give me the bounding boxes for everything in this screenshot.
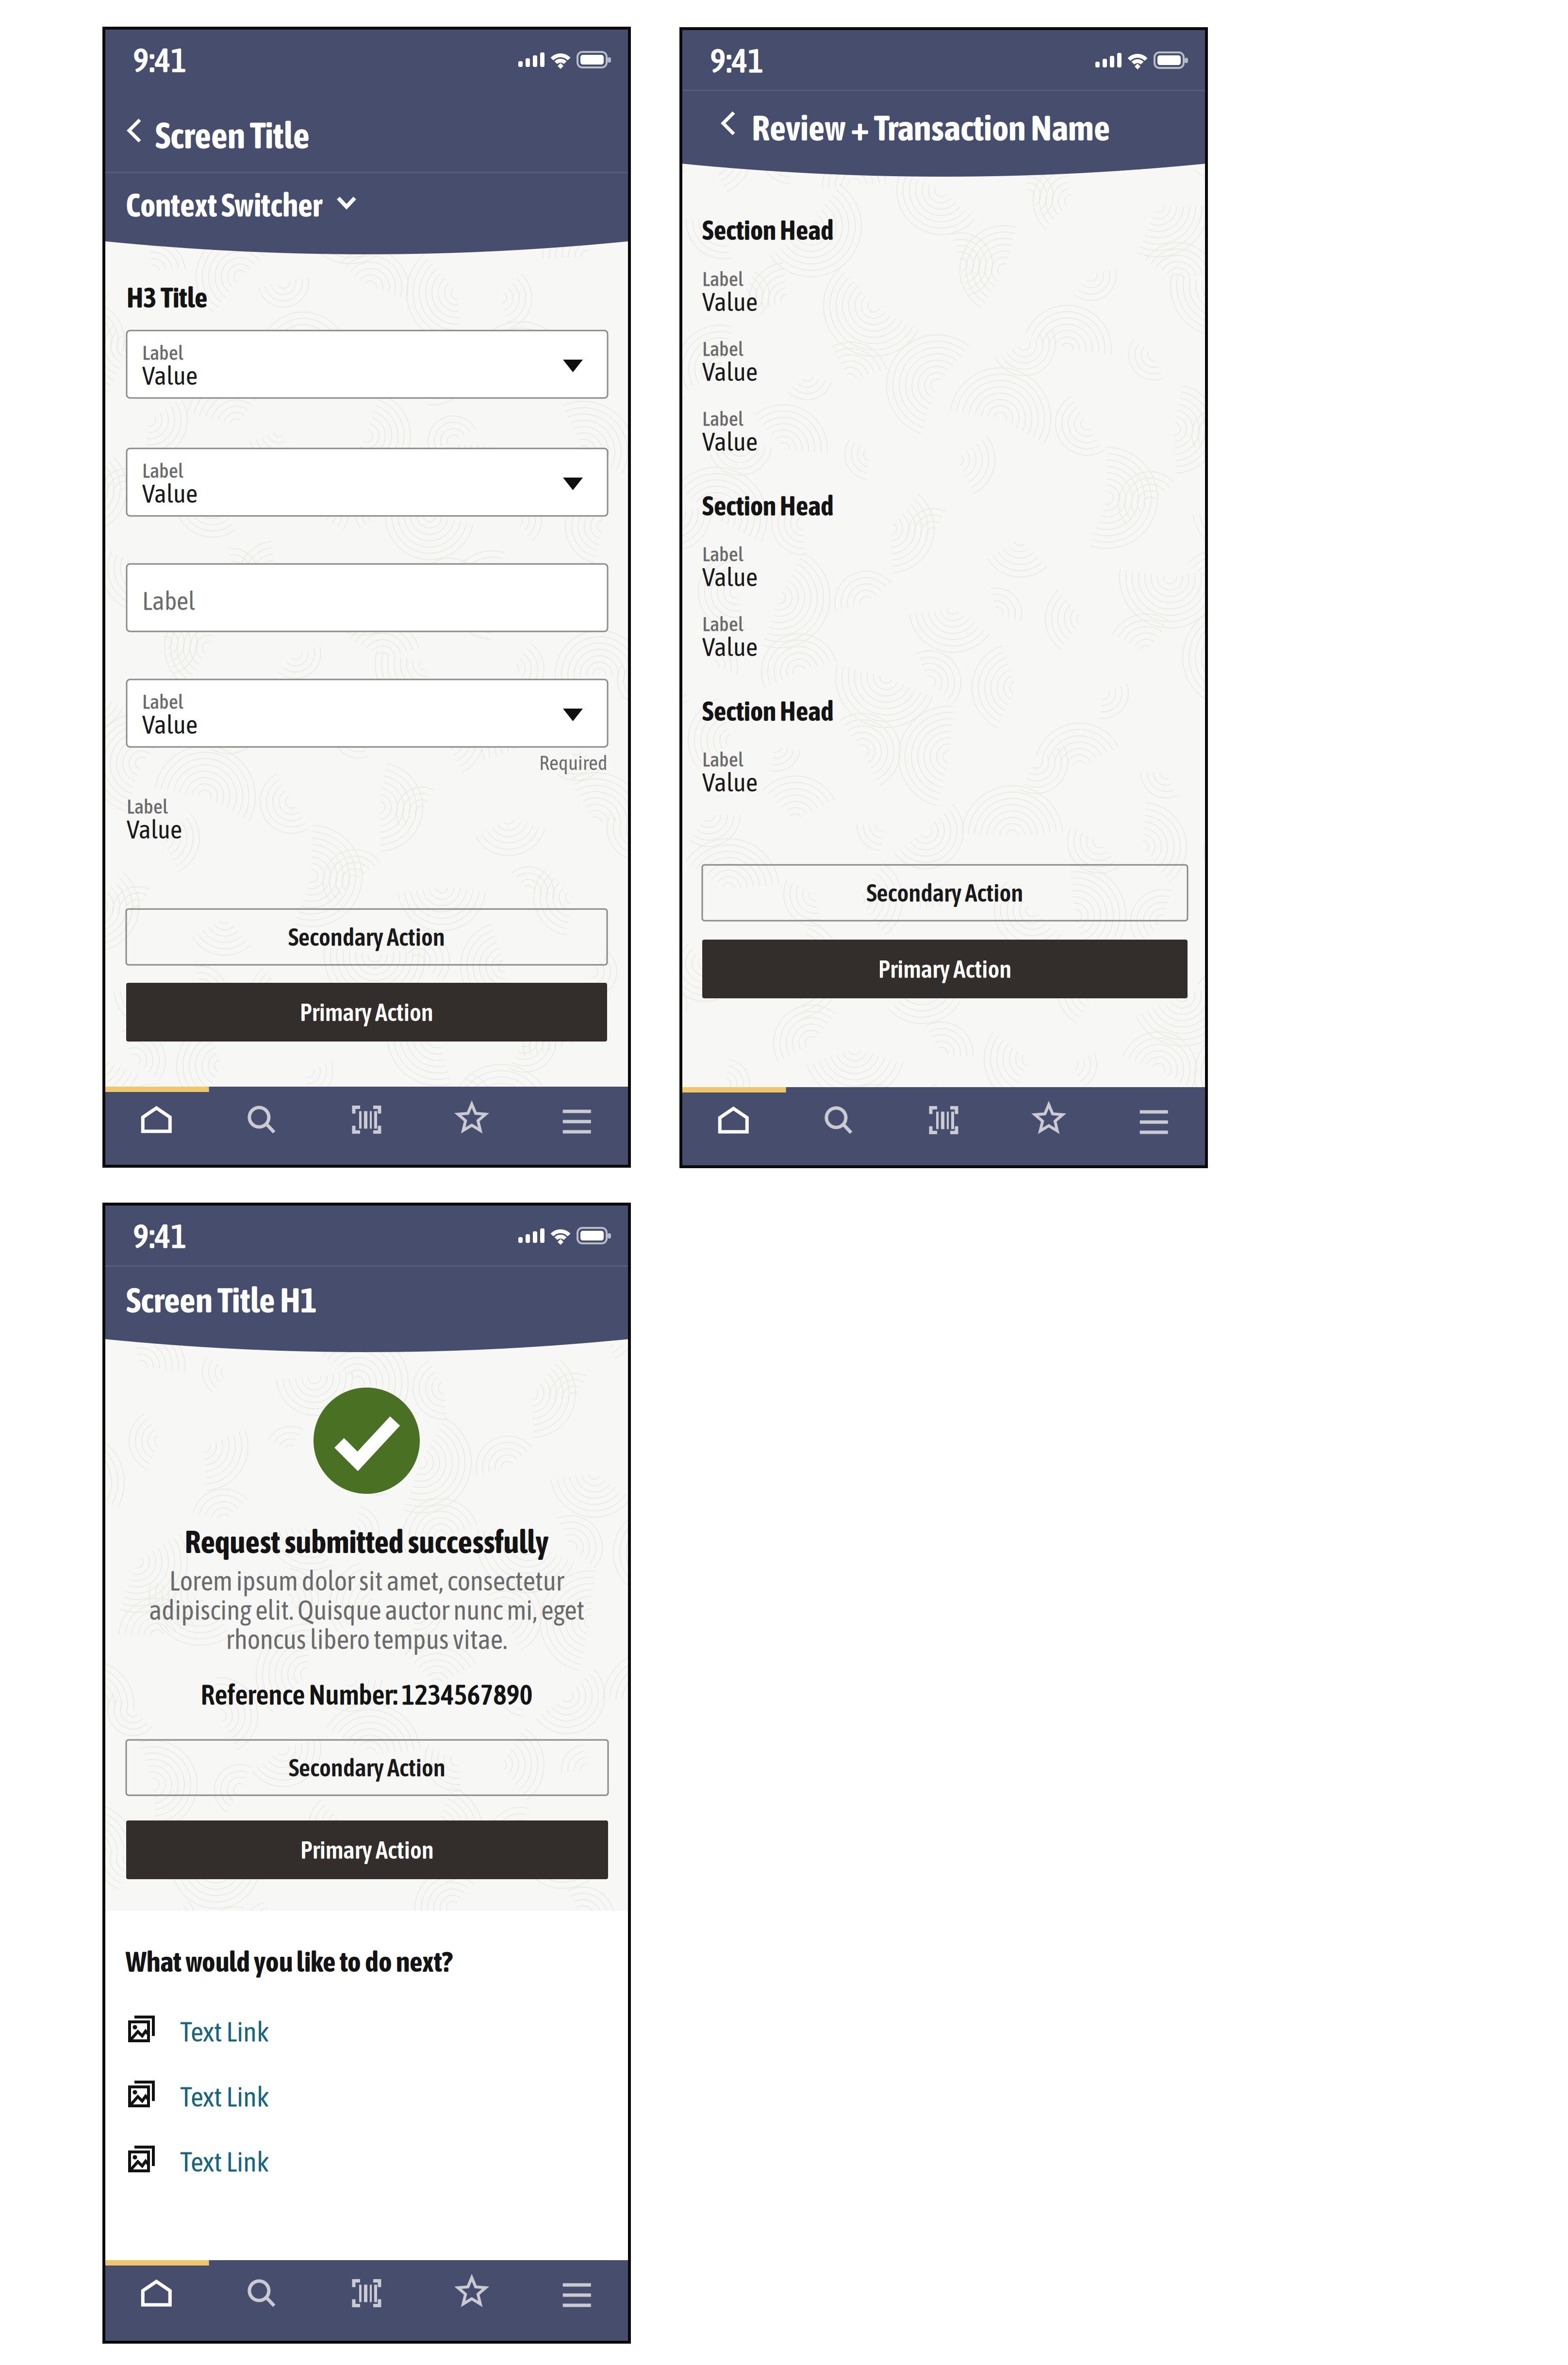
staticText: Screen Title H1 xyxy=(126,1280,317,1320)
button[interactable]: Menu xyxy=(1101,1107,1206,1138)
staticText: Review + Transaction Name xyxy=(752,107,1110,148)
button[interactable]: Search xyxy=(209,1104,314,1135)
button[interactable]: Scan barcode xyxy=(314,2278,419,2309)
staticText: H3 Title xyxy=(127,281,208,314)
button[interactable]: Favorites xyxy=(996,1104,1101,1135)
staticText: Section Head xyxy=(702,490,834,521)
staticText: Reference Number: 1234567890 xyxy=(201,1679,533,1711)
staticText: 9:41 xyxy=(133,1217,187,1255)
staticText: What would you like to do next? xyxy=(126,1945,452,1978)
button[interactable]: Favorites xyxy=(419,1103,524,1134)
staticText: Label xyxy=(702,748,743,771)
staticText: Value xyxy=(127,814,182,844)
button[interactable]: Context Switcher xyxy=(126,186,465,220)
button[interactable]: Text Link xyxy=(128,2146,419,2172)
staticText: Label xyxy=(702,407,743,430)
staticText: Secondary Action xyxy=(867,879,1023,907)
button[interactable]: Secondary Action xyxy=(126,909,607,965)
staticText: Value xyxy=(702,632,758,662)
button[interactable]: Primary Action xyxy=(126,1820,608,1879)
button[interactable]: Menu xyxy=(524,1106,629,1137)
button[interactable]: Scan barcode xyxy=(314,1104,419,1135)
staticText: Request submitted successfully xyxy=(185,1523,549,1560)
button[interactable]: Primary Action xyxy=(702,940,1188,998)
staticText: Label xyxy=(127,795,168,818)
staticText: Value xyxy=(702,287,758,316)
staticText: 9:41 xyxy=(133,41,187,79)
staticText: Text Link xyxy=(180,2146,269,2178)
staticText: Label xyxy=(142,586,195,615)
button[interactable]: Screen Title xyxy=(126,115,398,149)
staticText: Label xyxy=(142,459,183,482)
staticText: Primary Action xyxy=(878,955,1012,983)
staticText: Label xyxy=(702,543,743,566)
staticText: Value xyxy=(702,562,758,592)
staticText: Text Link xyxy=(180,2081,269,2112)
button[interactable]: Text Link xyxy=(128,2081,419,2107)
staticText: Secondary Action xyxy=(288,923,445,951)
staticText: Text Link xyxy=(180,2016,269,2047)
staticText: Section Head xyxy=(702,215,834,246)
staticText: Value xyxy=(702,427,758,456)
button[interactable]: Home xyxy=(681,1105,786,1136)
button[interactable]: Menu xyxy=(524,2280,629,2311)
button[interactable]: Text Link xyxy=(128,2016,419,2042)
staticText: Label xyxy=(702,612,743,635)
staticText: Lorem ipsum dolor sit amet, consectetur … xyxy=(149,1565,584,1655)
button[interactable]: Favorites xyxy=(419,2277,524,2308)
button[interactable]: Primary Action xyxy=(126,983,607,1042)
button[interactable]: Secondary Action xyxy=(126,1740,608,1795)
staticText: Label xyxy=(702,337,743,360)
staticText: Value xyxy=(702,767,758,797)
staticText: Label xyxy=(142,341,183,364)
button[interactable]: Home xyxy=(104,1104,209,1135)
staticText: Secondary Action xyxy=(289,1753,446,1782)
staticText: 9:41 xyxy=(710,41,764,80)
staticText: Section Head xyxy=(702,695,834,727)
staticText: Value xyxy=(142,479,198,508)
button[interactable]: Review + Transaction Name xyxy=(720,107,1186,141)
button[interactable]: Home xyxy=(104,2278,209,2309)
button[interactable]: Secondary Action xyxy=(702,865,1188,921)
staticText: Required xyxy=(539,751,608,774)
staticText: Primary Action xyxy=(300,1836,434,1864)
staticText: Value xyxy=(142,361,198,390)
staticText: Value xyxy=(142,710,198,739)
staticText: Value xyxy=(702,357,758,386)
button[interactable]: Scan barcode xyxy=(891,1105,996,1136)
button[interactable]: Search xyxy=(786,1105,891,1136)
staticText: Label xyxy=(702,267,743,290)
staticText: Context Switcher xyxy=(126,186,322,223)
button[interactable]: Search xyxy=(209,2278,314,2309)
staticText: Screen Title xyxy=(155,115,310,156)
staticText: Label xyxy=(142,690,183,713)
staticText: Primary Action xyxy=(300,998,433,1026)
